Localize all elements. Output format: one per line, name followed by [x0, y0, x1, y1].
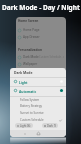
staticText: Dark Mode - Day / Night: [2, 3, 80, 12]
button[interactable]: Follow System: [10, 97, 66, 103]
button[interactable]: Light: [10, 77, 66, 86]
button[interactable]: Wallpaper: [16, 61, 66, 67]
button[interactable]: Sunset to Sunrise: [10, 110, 66, 116]
button[interactable]: Back: [23, 132, 27, 136]
staticText: Automatic: [19, 89, 37, 93]
staticText: Home Page: [23, 28, 40, 32]
staticText: Dark 18:00: [47, 124, 56, 128]
staticText: Personalization: [18, 48, 42, 52]
button[interactable]: Home: [36, 131, 41, 136]
button[interactable]: Custom Schedule: [10, 117, 66, 123]
button[interactable]: Home Page: [16, 27, 66, 33]
button[interactable]: Automatic: [10, 86, 66, 95]
staticText: Dark Mode: [14, 70, 33, 75]
button[interactable]: Battery Strategy: [10, 103, 66, 109]
staticText: Light 06:00: [20, 124, 31, 128]
staticText: Custom Schedule - edit: [39, 55, 64, 59]
staticText: App Drawer: [23, 35, 40, 39]
staticText: Custom Schedule: [20, 118, 44, 122]
button[interactable]: Dark Mode: [16, 54, 66, 60]
staticText: Battery Strategy: [20, 104, 42, 108]
staticText: Follow System: [20, 98, 40, 102]
button[interactable]: Light 06:00: [15, 123, 33, 128]
staticText: Home Screen: [18, 19, 39, 23]
button[interactable]: Dark 18:00: [42, 123, 58, 128]
button[interactable]: App Drawer: [16, 34, 66, 40]
staticText: Sunset to Sunrise: [20, 111, 44, 115]
staticText: Wallpaper: [23, 62, 38, 66]
staticText: Light: [19, 80, 28, 84]
staticText: Dark Mode: [23, 55, 39, 59]
